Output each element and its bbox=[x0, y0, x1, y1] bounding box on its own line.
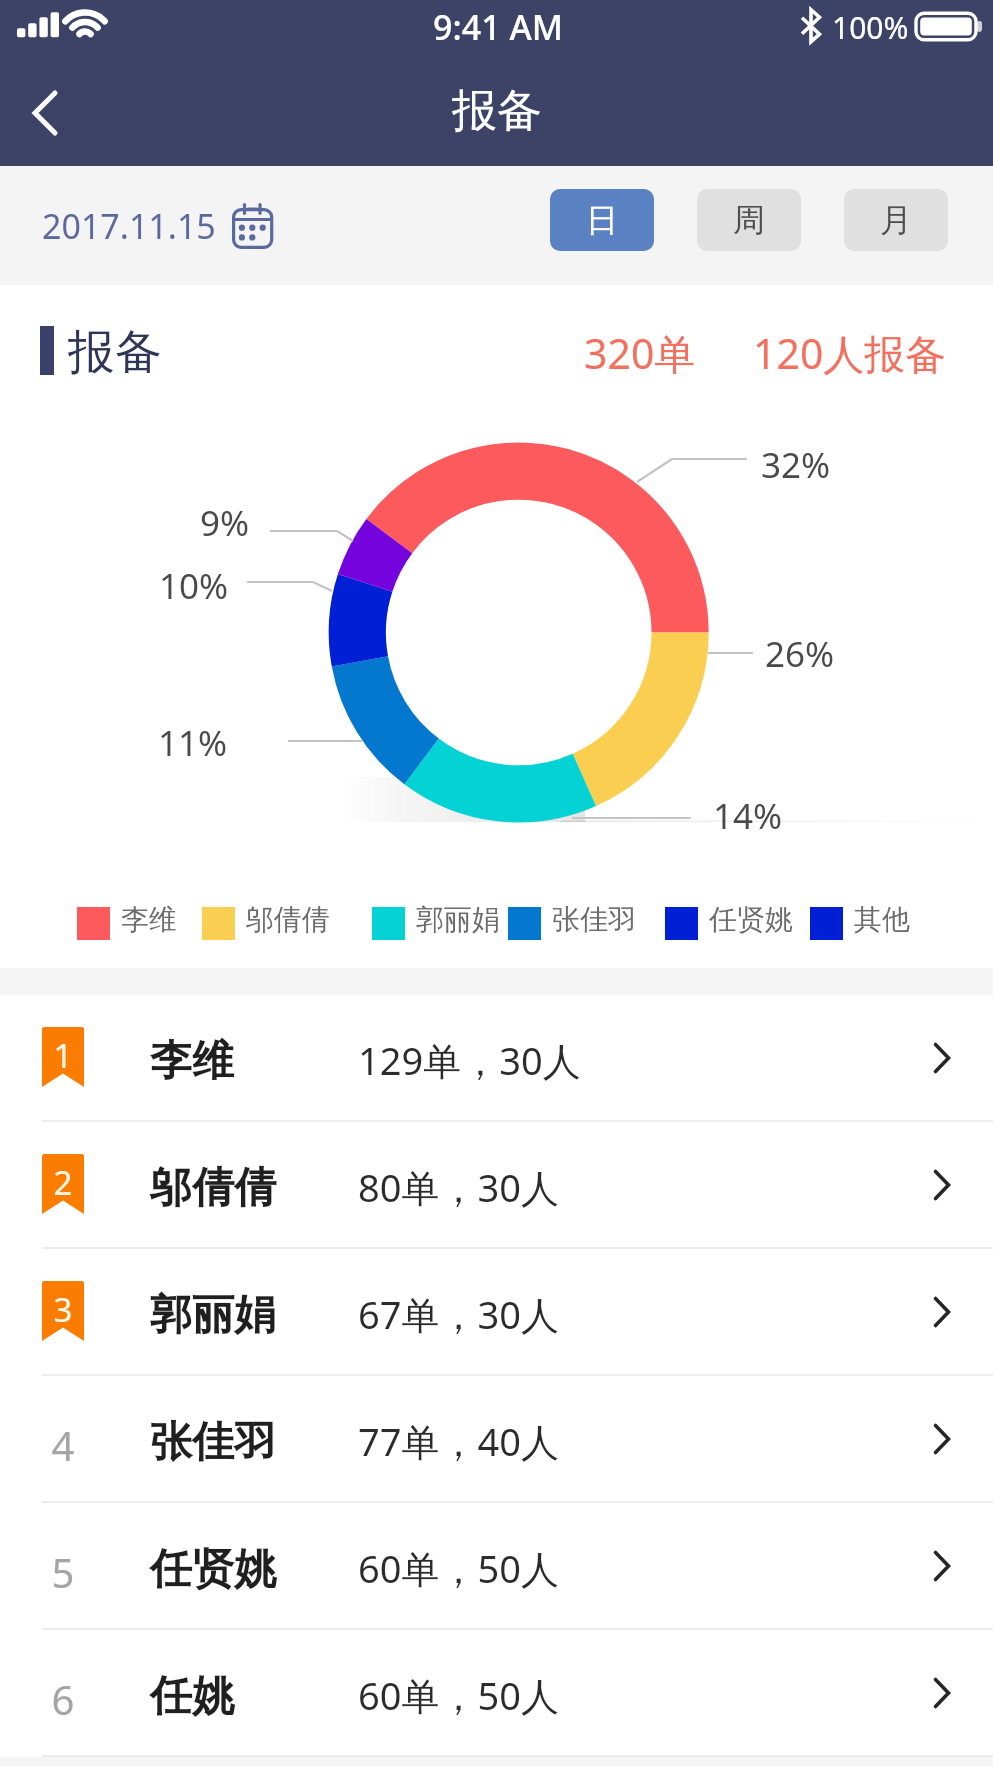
staticText: 张佳羽 bbox=[150, 1416, 276, 1469]
button[interactable]: 2 bbox=[0, 1122, 993, 1249]
button[interactable]: 6 bbox=[0, 1630, 993, 1757]
other: Details bbox=[927, 1163, 971, 1207]
staticText: 80单，30人 bbox=[358, 1161, 559, 1213]
button[interactable]: 1 bbox=[0, 995, 993, 1122]
staticText: 邬倩倩 bbox=[150, 1162, 276, 1215]
staticText: 6 bbox=[42, 1672, 84, 1726]
other: Details bbox=[927, 1544, 971, 1588]
staticText: 郭丽娟 bbox=[416, 902, 500, 937]
button[interactable]: Back bbox=[0, 66, 90, 156]
staticText: 320单 bbox=[584, 325, 696, 381]
staticText: 任贤姚 bbox=[709, 902, 793, 937]
staticText: 14% bbox=[713, 792, 783, 840]
staticText: 2017.11.15 bbox=[42, 203, 216, 249]
button[interactable]: 2017.11.15 bbox=[42, 166, 274, 285]
button[interactable]: 3 bbox=[0, 1249, 993, 1376]
staticText: 11% bbox=[158, 719, 228, 767]
staticText: 邬倩倩 bbox=[246, 902, 330, 937]
staticText: 9:41 AM bbox=[433, 4, 563, 50]
staticText: 120人报备 bbox=[753, 325, 947, 381]
button[interactable]: 日 bbox=[550, 189, 654, 251]
other: Details bbox=[927, 1417, 971, 1461]
staticText: 张佳羽 bbox=[552, 902, 636, 937]
staticText: 报备 bbox=[452, 83, 542, 140]
staticText: 月 bbox=[880, 200, 912, 240]
staticText: 3 bbox=[42, 1287, 84, 1332]
staticText: 日 bbox=[586, 200, 618, 240]
staticText: 2 bbox=[42, 1160, 84, 1205]
staticText: 李维 bbox=[121, 902, 177, 937]
staticText: 任姚 bbox=[150, 1670, 234, 1723]
staticText: 郭丽娟 bbox=[150, 1289, 276, 1342]
staticText: 任贤姚 bbox=[150, 1543, 276, 1596]
staticText: 100% bbox=[832, 7, 909, 48]
staticText: 67单，30人 bbox=[358, 1288, 559, 1340]
staticText: 1 bbox=[42, 1033, 84, 1078]
staticText: 4 bbox=[42, 1418, 84, 1472]
button[interactable]: 周 bbox=[697, 189, 801, 251]
staticText: 32% bbox=[761, 441, 831, 489]
staticText: 60单，50人 bbox=[358, 1542, 559, 1594]
button[interactable]: 月 bbox=[844, 189, 948, 251]
staticText: 60单，50人 bbox=[358, 1669, 559, 1721]
button[interactable]: 4 bbox=[0, 1376, 993, 1503]
staticText: 26% bbox=[765, 630, 835, 678]
staticText: 报备 bbox=[68, 323, 162, 382]
staticText: 周 bbox=[733, 200, 765, 240]
other: Details bbox=[927, 1036, 971, 1080]
staticText: 9% bbox=[200, 499, 250, 547]
other: Details bbox=[927, 1290, 971, 1334]
staticText: 5 bbox=[42, 1545, 84, 1599]
button[interactable]: 5 bbox=[0, 1503, 993, 1630]
staticText: 其他 bbox=[854, 902, 910, 937]
staticText: 李维 bbox=[150, 1035, 234, 1088]
staticText: 129单，30人 bbox=[358, 1034, 581, 1086]
staticText: 77单，40人 bbox=[358, 1415, 559, 1467]
other: Details bbox=[927, 1671, 971, 1715]
staticText: 10% bbox=[159, 562, 229, 610]
